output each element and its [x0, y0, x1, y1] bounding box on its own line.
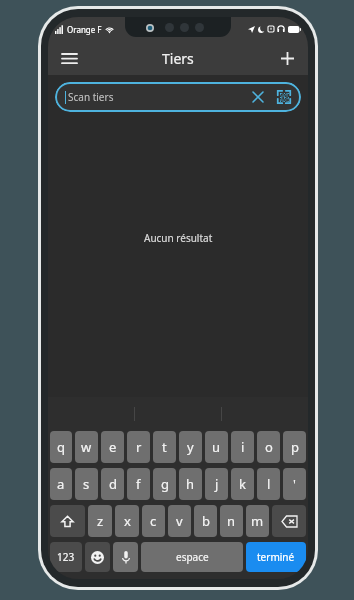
staticText: q	[57, 438, 65, 456]
button[interactable]: Menu	[54, 43, 84, 73]
button[interactable]: e	[101, 431, 124, 463]
staticText: l	[267, 475, 271, 493]
button[interactable]: q	[50, 431, 72, 463]
staticText: v	[176, 512, 183, 530]
staticText: Scan tiers	[68, 90, 248, 104]
staticText: Aucun résultat	[144, 231, 213, 245]
staticText: t	[162, 438, 167, 456]
staticText: g	[161, 475, 169, 493]
staticText: 123	[57, 550, 75, 564]
button[interactable]: b	[194, 505, 217, 537]
staticText: d	[109, 475, 117, 493]
button[interactable]: f	[127, 468, 150, 500]
button[interactable]: g	[153, 468, 176, 500]
button[interactable]: Emoji	[85, 542, 110, 572]
staticText: z	[97, 512, 104, 530]
button[interactable]: Ajouter	[272, 43, 302, 73]
staticText: j	[215, 475, 219, 493]
button[interactable]: c	[142, 505, 165, 537]
button[interactable]: v	[168, 505, 191, 537]
button[interactable]: l	[257, 468, 280, 500]
staticText: o	[265, 438, 273, 456]
staticText: a	[57, 475, 65, 493]
staticText: p	[291, 438, 299, 456]
staticText: terminé	[257, 550, 295, 564]
button[interactable]: x	[115, 505, 139, 537]
button[interactable]: t	[153, 431, 176, 463]
button[interactable]: a	[50, 468, 72, 500]
button[interactable]: u	[205, 431, 228, 463]
staticText: espace	[176, 550, 209, 564]
staticText: Orange F	[67, 24, 102, 35]
staticText: c	[150, 512, 157, 530]
button[interactable]: Supprimer	[272, 505, 306, 537]
button[interactable]: y	[179, 431, 202, 463]
button[interactable]: Scan tiers	[55, 82, 301, 112]
button[interactable]: terminé	[246, 542, 306, 572]
button[interactable]: k	[231, 468, 254, 500]
staticText: b	[202, 512, 210, 530]
staticText: w	[81, 438, 92, 456]
button[interactable]: r	[127, 431, 150, 463]
staticText: Tiers	[162, 49, 194, 68]
staticText: u	[212, 438, 221, 456]
staticText: h	[186, 475, 195, 493]
button[interactable]: w	[75, 431, 98, 463]
button[interactable]: z	[88, 505, 112, 537]
staticText: n	[227, 512, 236, 530]
button[interactable]: s	[75, 468, 98, 500]
staticText: m	[251, 512, 264, 530]
button[interactable]: '	[283, 468, 306, 500]
staticText: k	[239, 475, 246, 493]
button[interactable]: p	[283, 431, 306, 463]
button[interactable]: Scanner QR	[273, 86, 295, 108]
staticText: s	[83, 475, 90, 493]
button[interactable]: o	[257, 431, 280, 463]
button[interactable]: Micro	[113, 542, 138, 572]
button[interactable]: Majuscule	[50, 505, 85, 537]
button[interactable]: j	[205, 468, 228, 500]
staticText: y	[187, 438, 194, 456]
button[interactable]: i	[231, 431, 254, 463]
staticText: e	[109, 438, 117, 456]
staticText: x	[124, 512, 131, 530]
button[interactable]: 123	[50, 542, 82, 572]
staticText: '	[293, 475, 296, 493]
button[interactable]: d	[101, 468, 124, 500]
button[interactable]: n	[220, 505, 243, 537]
button[interactable]: Effacer	[248, 87, 268, 107]
button[interactable]: m	[246, 505, 269, 537]
staticText: i	[241, 438, 245, 456]
button[interactable]: espace	[141, 542, 243, 572]
staticText: r	[136, 438, 142, 456]
button[interactable]: h	[179, 468, 202, 500]
staticText: f	[136, 475, 141, 493]
